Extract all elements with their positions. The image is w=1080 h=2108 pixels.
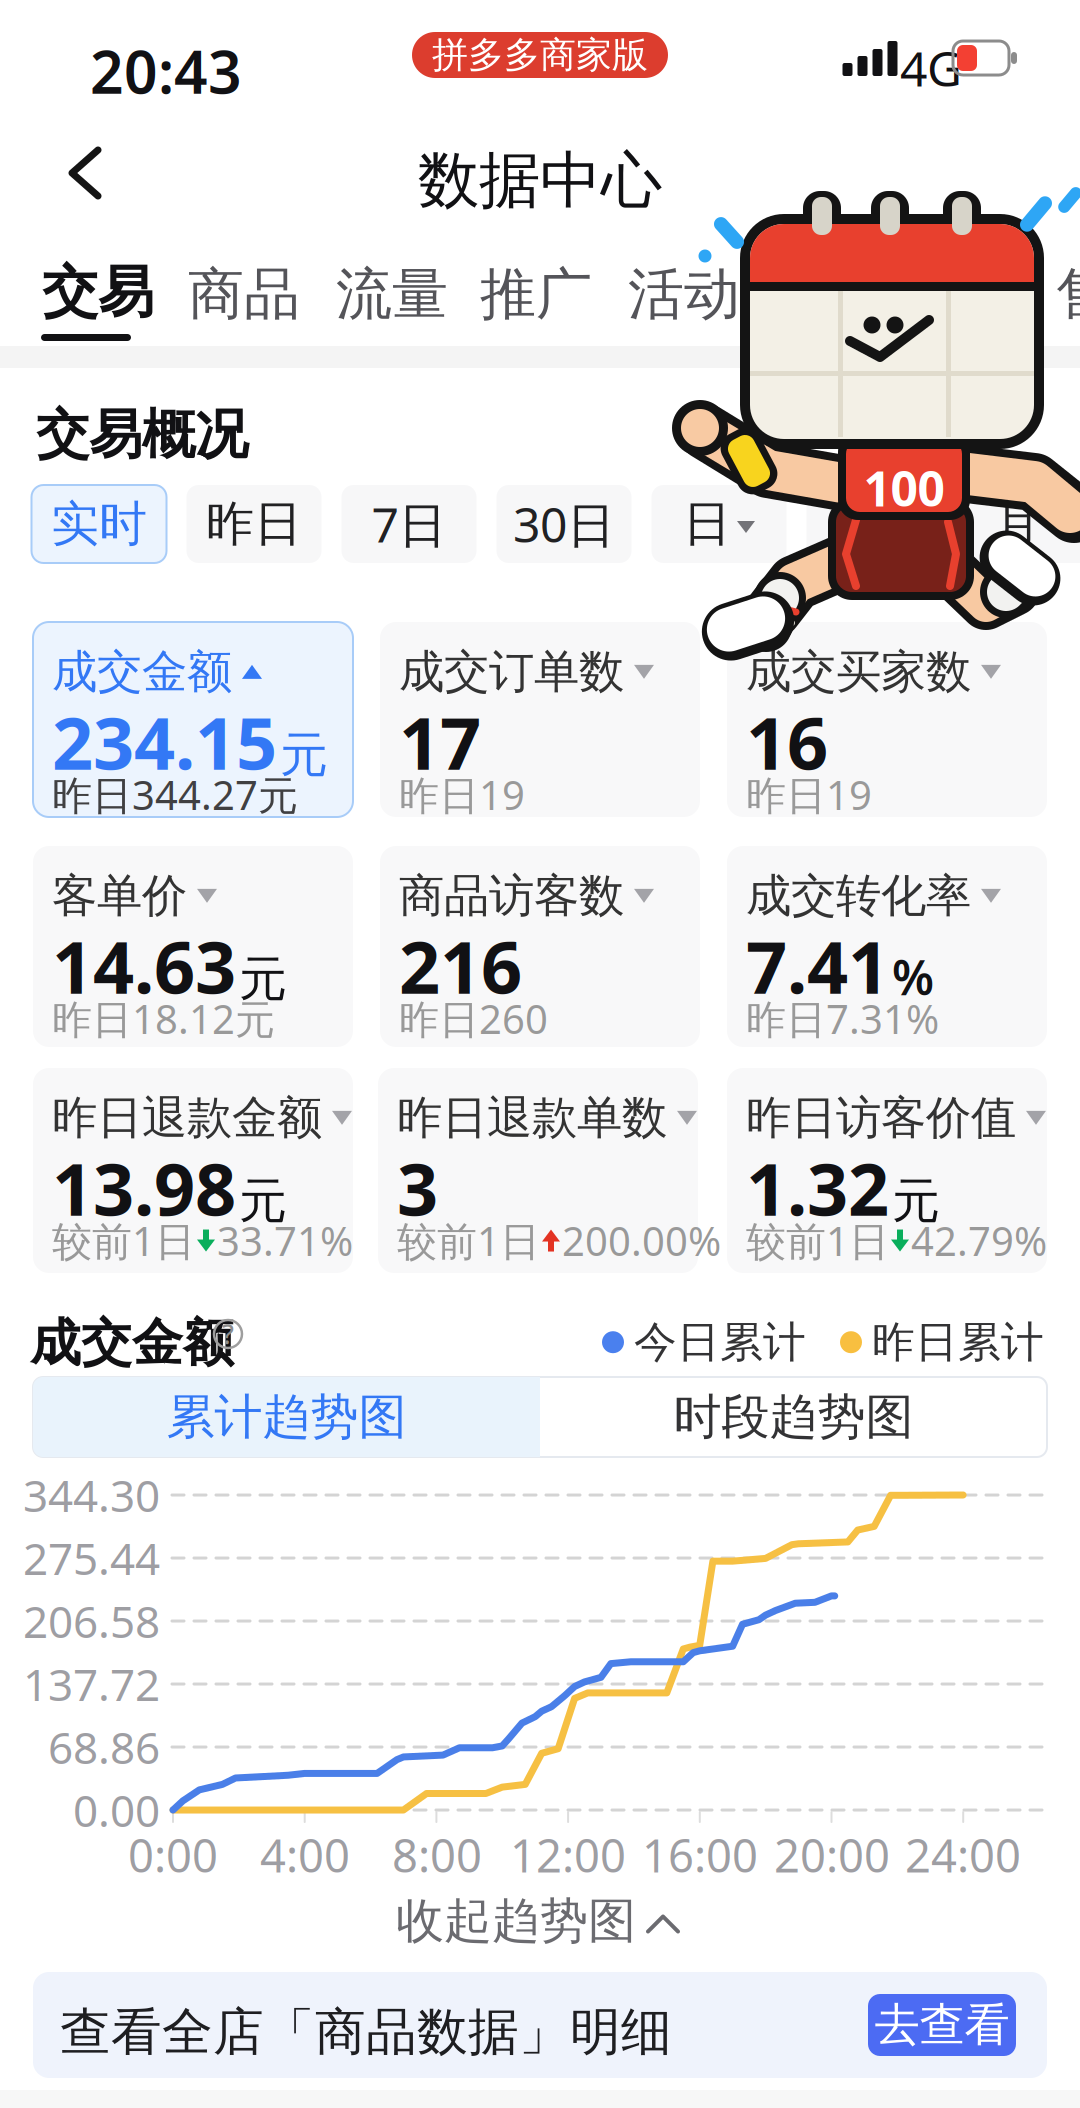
- staticText: 累计趋势图: [166, 1387, 406, 1446]
- staticText: 216: [399, 918, 522, 1014]
- staticText: 275.44: [23, 1529, 160, 1587]
- staticText: 客单价: [52, 868, 187, 924]
- button[interactable]: 流量: [336, 260, 448, 329]
- staticText: 昨日260: [399, 992, 548, 1045]
- button[interactable]: 拼多多商家版: [412, 32, 668, 78]
- button[interactable]: 收起趋势图: [396, 1891, 678, 1950]
- staticText: 30日: [513, 492, 615, 556]
- button[interactable]: 商品访客数: [380, 846, 700, 1047]
- staticText: 数据中心: [418, 143, 662, 218]
- button[interactable]: 累计趋势图: [33, 1377, 540, 1457]
- staticText: 元: [239, 950, 287, 1009]
- staticText: 流量: [336, 260, 448, 329]
- staticText: %: [892, 945, 934, 1009]
- staticText: 0.00: [73, 1781, 160, 1839]
- button[interactable]: 昨日退款金额: [33, 1068, 353, 1273]
- staticText: 元: [892, 1172, 940, 1231]
- staticText: 24:00: [905, 1825, 1021, 1885]
- staticText: 206.58: [23, 1592, 160, 1650]
- staticText: 交易: [42, 258, 154, 327]
- button[interactable]: 月: [961, 485, 1080, 563]
- staticText: 成交订单数: [399, 644, 624, 700]
- button[interactable]: 交易: [42, 258, 154, 327]
- staticText: 较前1日: [397, 1214, 540, 1267]
- staticText: 100: [863, 456, 944, 520]
- staticText: 昨日访客价值: [746, 1090, 1016, 1146]
- staticText: 交易概况: [36, 402, 248, 467]
- staticText: 元: [280, 726, 328, 785]
- staticText: 14.63: [52, 918, 236, 1014]
- staticText: 42.79%: [911, 1214, 1047, 1267]
- staticText: 成交转化率: [746, 868, 971, 924]
- button[interactable]: 成交买家数: [727, 622, 1047, 817]
- button[interactable]: 成交转化率: [727, 846, 1047, 1047]
- staticText: 昨日19: [746, 768, 872, 821]
- staticText: 7日: [371, 492, 446, 556]
- staticText: 周: [838, 494, 886, 553]
- staticText: 昨日退款单数: [397, 1090, 667, 1146]
- staticText: 较前1日: [746, 1214, 889, 1267]
- staticText: 成交金额: [52, 644, 232, 700]
- button[interactable]: 成交金额: [33, 622, 353, 817]
- staticText: 20:43: [90, 32, 242, 110]
- staticText: 成交买家数: [746, 644, 971, 700]
- staticText: 售: [1056, 260, 1080, 329]
- staticText: 137.72: [23, 1655, 160, 1713]
- staticText: 收起趋势图: [396, 1891, 636, 1950]
- staticText: 昨日退款金额: [52, 1090, 322, 1146]
- staticText: 昨日344.27元: [52, 768, 298, 821]
- staticText: 7.41: [746, 918, 889, 1014]
- staticText: 234.15: [52, 694, 277, 790]
- staticText: 昨日18.12元: [52, 992, 275, 1045]
- staticText: 4G: [900, 36, 962, 100]
- button[interactable]: 周: [806, 485, 941, 563]
- staticText: 昨日7.31%: [746, 992, 939, 1045]
- button[interactable]: 帮助: [214, 1320, 242, 1348]
- staticText: 17: [399, 694, 481, 790]
- staticText: 昨日19: [399, 768, 525, 821]
- staticText: 0:00: [128, 1825, 218, 1885]
- staticText: 月: [993, 494, 1041, 553]
- staticText: 元: [239, 1172, 287, 1231]
- button[interactable]: Back: [72, 150, 99, 196]
- button[interactable]: 成交订单数: [380, 622, 700, 817]
- staticText: 成交金额: [30, 1312, 234, 1374]
- button[interactable]: 商品: [188, 260, 300, 329]
- button[interactable]: 日: [651, 485, 786, 563]
- staticText: 日: [683, 494, 731, 553]
- button[interactable]: 客单价: [33, 846, 353, 1047]
- staticText: 4:00: [260, 1825, 350, 1885]
- staticText: ?: [222, 1316, 234, 1352]
- staticText: 344.30: [23, 1466, 160, 1524]
- staticText: 8:00: [392, 1825, 482, 1885]
- button[interactable]: 活动: [628, 260, 740, 329]
- button[interactable]: 昨日退款单数: [380, 1068, 700, 1273]
- staticText: 16:00: [642, 1825, 758, 1885]
- staticText: 去查看: [874, 1997, 1009, 2053]
- staticText: 推广: [480, 260, 592, 329]
- staticText: 时段趋势图: [673, 1387, 913, 1446]
- staticText: 1.32: [746, 1140, 889, 1236]
- staticText: 昨日累计: [872, 1316, 1044, 1368]
- staticText: 68.86: [48, 1718, 160, 1776]
- staticText: 较前1日: [52, 1214, 195, 1267]
- button[interactable]: 推广: [480, 260, 592, 329]
- button[interactable]: 实时: [31, 485, 166, 563]
- staticText: 200.00%: [562, 1214, 721, 1267]
- staticText: 商品访客数: [399, 868, 624, 924]
- button[interactable]: 30日: [496, 485, 631, 563]
- button[interactable]: 时段趋势图: [540, 1377, 1047, 1457]
- button[interactable]: 去查看: [868, 1994, 1016, 2056]
- staticText: 查看全店「商品数据」明细: [60, 2001, 672, 2063]
- staticText: 今日累计: [634, 1316, 806, 1368]
- button[interactable]: 昨日访客价值: [727, 1068, 1047, 1273]
- button[interactable]: 昨日: [186, 485, 321, 563]
- staticText: 20:00: [774, 1825, 890, 1885]
- staticText: 实时: [51, 494, 147, 553]
- staticText: 12:00: [510, 1825, 626, 1885]
- staticText: 3: [397, 1140, 438, 1236]
- staticText: 昨日: [206, 494, 302, 553]
- staticText: 商品: [188, 260, 300, 329]
- staticText: 拼多多商家版: [432, 33, 648, 77]
- button[interactable]: 7日: [341, 485, 476, 563]
